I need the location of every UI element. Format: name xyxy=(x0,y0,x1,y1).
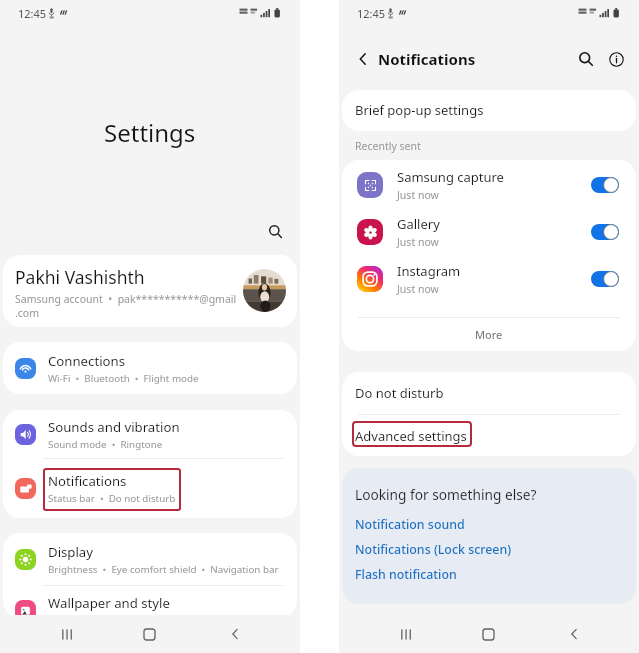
button[interactable]: Search settings xyxy=(261,217,289,245)
button[interactable]: About notifications xyxy=(602,45,630,73)
staticText: Advanced settings xyxy=(355,427,467,445)
staticText: 12:45 xyxy=(357,6,386,21)
staticText: Samsung account • pak***********@gmail .… xyxy=(15,292,295,320)
button[interactable]: Recent apps xyxy=(385,615,425,653)
staticText: Notifications xyxy=(378,49,476,69)
staticText: Do not disturb xyxy=(355,384,444,402)
staticText: Connections xyxy=(48,352,125,370)
staticText: Wallpaper and style xyxy=(48,594,170,612)
staticText: Brightness • Eye comfort shield • Naviga… xyxy=(48,563,279,576)
button[interactable]: Back xyxy=(215,615,255,653)
button[interactable]: Flash notification xyxy=(355,566,457,583)
button[interactable]: Display xyxy=(3,533,297,585)
staticText: More xyxy=(475,327,503,342)
staticText: Wi-Fi • Bluetooth • Flight mode xyxy=(48,372,199,385)
staticText: Just now xyxy=(397,282,439,296)
staticText: 12:45 xyxy=(18,6,47,21)
staticText: Settings xyxy=(104,116,196,149)
button[interactable]: Wallpaper and style xyxy=(3,586,297,613)
staticText: Just now xyxy=(397,188,439,202)
staticText: Brief pop-up settings xyxy=(355,101,484,119)
staticText: Display xyxy=(48,543,93,561)
button[interactable]: Toggle notifications xyxy=(591,224,619,240)
button[interactable]: Notification sound xyxy=(355,516,465,533)
staticText: Pakhi Vashishth xyxy=(15,265,145,289)
button[interactable]: Toggle notifications xyxy=(591,271,619,287)
button[interactable]: Notifications xyxy=(3,459,297,518)
button[interactable]: More xyxy=(342,318,636,351)
staticText: Recently sent xyxy=(355,139,421,153)
button[interactable]: Recent apps xyxy=(46,615,86,653)
button[interactable]: Navigate up xyxy=(351,47,375,71)
button[interactable]: Samsung capture xyxy=(342,161,636,208)
button[interactable]: Connections xyxy=(3,342,297,394)
button[interactable]: Brief pop-up settings xyxy=(342,90,636,131)
staticText: Gallery xyxy=(397,215,440,233)
button[interactable]: Advanced settings xyxy=(342,415,636,456)
button[interactable]: Pakhi Vashishth xyxy=(3,255,297,327)
staticText: Status bar • Do not disturb xyxy=(48,492,176,505)
staticText: Samsung capture xyxy=(397,168,504,186)
button[interactable]: Search xyxy=(572,45,600,73)
button[interactable]: Gallery xyxy=(342,208,636,255)
button[interactable]: Toggle notifications xyxy=(591,177,619,193)
button[interactable]: Home xyxy=(129,615,169,653)
staticText: Instagram xyxy=(397,262,461,280)
staticText: Sound mode • Ringtone xyxy=(48,438,163,451)
staticText: Just now xyxy=(397,235,439,249)
button[interactable]: Back xyxy=(554,615,594,653)
button[interactable]: Do not disturb xyxy=(342,372,636,414)
button[interactable]: Sounds and vibration xyxy=(3,410,297,458)
staticText: Sounds and vibration xyxy=(48,418,180,436)
button[interactable]: Home xyxy=(468,615,508,653)
button[interactable]: Notifications (Lock screen) xyxy=(355,541,512,558)
button[interactable]: Instagram xyxy=(342,255,636,302)
staticText: Notifications xyxy=(48,472,127,490)
staticText: Looking for something else? xyxy=(355,485,537,504)
